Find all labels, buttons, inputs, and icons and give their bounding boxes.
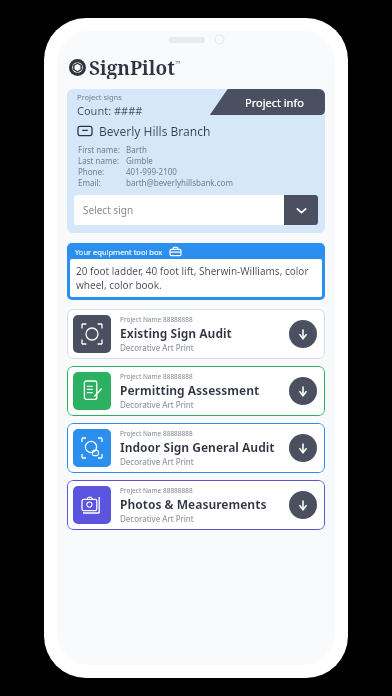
staticText: Existing Sign Audit — [120, 325, 232, 341]
button[interactable]: Project Name 88888888 — [67, 423, 325, 473]
staticText: Gimble — [126, 155, 153, 166]
staticText: SignPilot — [89, 55, 175, 79]
staticText: barth@beverlyhillsbank.com — [126, 177, 233, 188]
button[interactable]: Download Existing Sign Audit — [289, 320, 317, 348]
staticText: Project Name 88888888 — [120, 315, 193, 324]
button[interactable]: Select sign — [74, 195, 318, 225]
staticText: Project signs — [77, 92, 122, 102]
staticText: Last name: — [78, 155, 120, 166]
other: Expand sign list — [284, 195, 318, 225]
staticText: Indoor Sign General Audit — [120, 439, 275, 455]
button[interactable]: Project Name 88888888 — [67, 309, 325, 359]
staticText: Project Name 88888888 — [120, 429, 193, 438]
button[interactable]: Download Indoor Sign General Audit — [289, 434, 317, 462]
button[interactable]: Project Name 88888888 — [67, 366, 325, 416]
staticText: Permitting Assessment — [120, 382, 260, 398]
staticText: Phone: — [78, 166, 105, 177]
staticText: Project Name 88888888 — [120, 372, 193, 381]
staticText: Email: — [78, 177, 101, 188]
staticText: Count: #### — [77, 103, 143, 118]
staticText: Photos & Measurements — [120, 496, 267, 512]
staticText: Your equipment tool box — [75, 247, 163, 257]
staticText: 20 foot ladder, 40 foot lift, Sherwin-Wi… — [76, 264, 316, 292]
staticText: Beverly Hills Branch — [99, 123, 211, 139]
button[interactable]: Project Name 88888888 — [67, 480, 325, 530]
staticText: Decorative Art Print — [120, 456, 194, 467]
staticText: Decorative Art Print — [120, 399, 194, 410]
staticText: Select sign — [83, 203, 284, 217]
staticText: Project Name 88888888 — [120, 486, 193, 495]
button[interactable]: Download Permitting Assessment — [289, 377, 317, 405]
staticText: 401-999-2100 — [126, 166, 177, 177]
staticText: First name: — [78, 144, 120, 155]
staticText: ™ — [175, 59, 181, 69]
staticText: Project info — [245, 95, 304, 110]
staticText: Decorative Art Print — [120, 513, 194, 524]
staticText: Decorative Art Print — [120, 342, 194, 353]
button[interactable]: Download Photos & Measurements — [289, 491, 317, 519]
staticText: Barth — [126, 144, 147, 155]
